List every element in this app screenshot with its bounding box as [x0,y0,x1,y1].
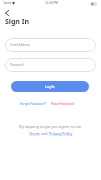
staticText: By tapping Login you agree to our [19,124,82,129]
button[interactable]: Terms [29,131,40,136]
button[interactable]: Privacy Policy [49,131,73,136]
button[interactable]: Password [5,58,96,72]
staticText: and [40,131,49,136]
button[interactable]: Log In [11,81,89,92]
button[interactable]: Forgot Password? [20,102,46,106]
button[interactable]: Back [1,7,12,18]
staticText: Log In [45,85,55,89]
staticText: Email Address [10,43,30,47]
staticText: Carrier [3,1,12,5]
button[interactable]: Reset Password [51,102,74,106]
button[interactable]: Email Address [5,38,96,52]
staticText: Password [10,63,24,67]
staticText: 12:30 PM [45,1,58,5]
staticText: Sign In [5,17,30,27]
